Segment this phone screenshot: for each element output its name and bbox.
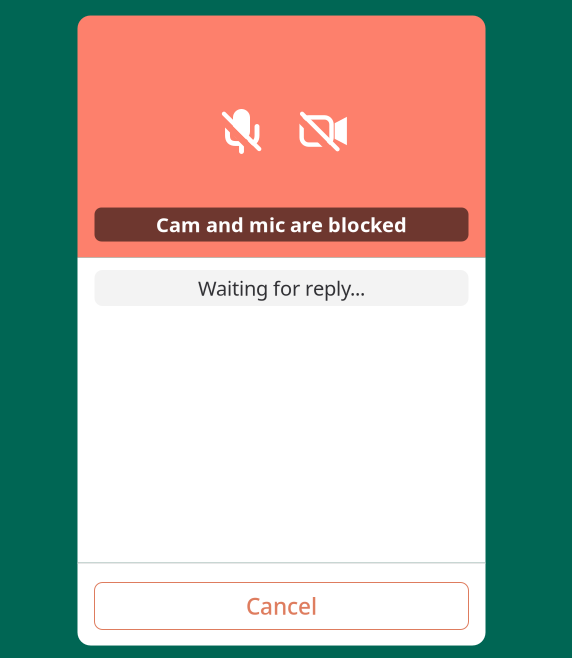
staticText: Cancel <box>246 591 317 621</box>
staticText: Waiting for reply... <box>198 275 365 301</box>
staticText: Cam and mic are blocked <box>156 211 407 238</box>
button[interactable]: Cancel <box>77 563 485 645</box>
